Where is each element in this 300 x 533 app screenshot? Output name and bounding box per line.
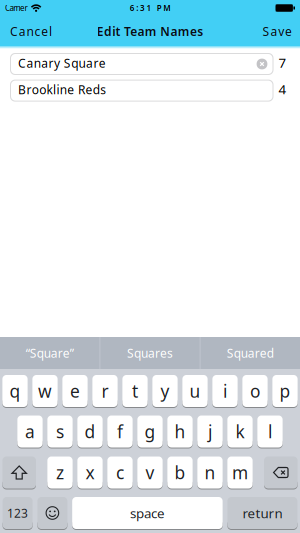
button[interactable]: o xyxy=(242,375,268,408)
staticText: d xyxy=(84,420,95,443)
staticText: Edit Team Names xyxy=(97,23,203,39)
staticText: q xyxy=(9,379,20,402)
staticText: i xyxy=(223,379,227,402)
staticText: m xyxy=(232,461,248,484)
staticText: 6:31 PM xyxy=(130,3,170,13)
staticText: 7 xyxy=(278,54,286,71)
button[interactable]: z xyxy=(47,456,73,489)
staticText: k xyxy=(235,420,244,443)
staticText: l xyxy=(268,420,272,443)
button[interactable]: Shift xyxy=(2,456,36,489)
button[interactable]: e xyxy=(62,375,88,408)
button[interactable]: Clear text xyxy=(256,58,267,69)
button[interactable]: m xyxy=(227,456,253,489)
staticText: Squares xyxy=(127,345,173,361)
staticText: 4 xyxy=(278,80,286,98)
staticText: h xyxy=(174,420,185,443)
button[interactable]: Squares xyxy=(100,337,200,369)
button[interactable]: Cancel xyxy=(10,23,52,39)
button[interactable]: Squared xyxy=(200,337,300,369)
staticText: g xyxy=(144,420,155,443)
staticText: Squared xyxy=(227,345,274,361)
button[interactable]: q xyxy=(2,375,28,408)
button[interactable]: k xyxy=(227,415,253,448)
staticText: a xyxy=(25,420,35,443)
staticText: Brookline Reds xyxy=(18,82,106,97)
staticText: e xyxy=(70,379,80,402)
staticText: j xyxy=(208,420,212,443)
staticText: s xyxy=(56,420,64,443)
staticText: Cancel xyxy=(10,23,52,39)
button[interactable]: w xyxy=(32,375,58,408)
button[interactable]: 123 xyxy=(3,497,33,530)
staticText: Save xyxy=(263,23,292,39)
staticText: Carrier xyxy=(5,3,28,13)
staticText: x xyxy=(85,461,94,484)
button[interactable]: h xyxy=(167,415,193,448)
button[interactable]: j xyxy=(197,415,223,448)
button[interactable]: n xyxy=(197,456,223,489)
staticText: y xyxy=(160,379,169,402)
staticText: r xyxy=(101,379,108,402)
button[interactable]: g xyxy=(137,415,163,448)
staticText: 123 xyxy=(7,505,28,521)
button[interactable]: Canary Square xyxy=(10,53,273,75)
staticText: t xyxy=(132,379,138,402)
staticText: p xyxy=(279,379,290,402)
staticText: v xyxy=(145,461,154,484)
button[interactable]: return xyxy=(227,497,297,530)
staticText: “Square” xyxy=(26,345,74,361)
button[interactable]: c xyxy=(107,456,133,489)
button[interactable]: Delete xyxy=(264,456,298,489)
button[interactable]: v xyxy=(137,456,163,489)
staticText: u xyxy=(189,379,200,402)
staticText: b xyxy=(174,461,185,484)
button[interactable]: d xyxy=(77,415,103,448)
button[interactable]: t xyxy=(122,375,148,408)
button[interactable]: y xyxy=(152,375,178,408)
staticText: Canary Square xyxy=(18,55,106,71)
button[interactable]: b xyxy=(167,456,193,489)
button[interactable]: p xyxy=(272,375,298,408)
button[interactable]: l xyxy=(257,415,283,448)
staticText: w xyxy=(38,379,52,402)
button[interactable]: r xyxy=(92,375,118,408)
staticText: o xyxy=(250,379,260,402)
button[interactable]: u xyxy=(182,375,208,408)
staticText: return xyxy=(242,504,282,522)
button[interactable]: Brookline Reds xyxy=(10,80,273,102)
button[interactable]: a xyxy=(17,415,43,448)
button[interactable]: s xyxy=(47,415,73,448)
button[interactable]: Save xyxy=(263,23,292,39)
staticText: n xyxy=(204,461,215,484)
staticText: space xyxy=(130,504,165,522)
button[interactable]: space xyxy=(72,497,223,530)
button[interactable]: f xyxy=(107,415,133,448)
button[interactable]: i xyxy=(212,375,238,408)
button[interactable]: x xyxy=(77,456,103,489)
button[interactable]: “Square” xyxy=(0,337,99,369)
staticText: f xyxy=(117,420,123,443)
staticText: z xyxy=(56,461,64,484)
button[interactable]: Emoji xyxy=(37,497,67,530)
staticText: c xyxy=(116,461,124,484)
